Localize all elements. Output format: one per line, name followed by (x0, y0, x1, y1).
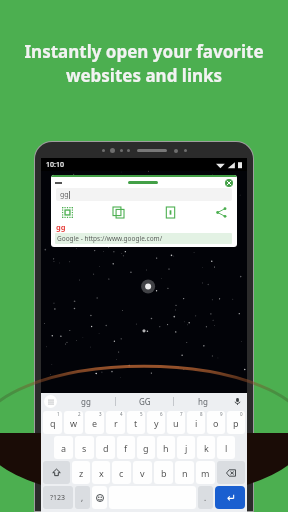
button[interactable]: Save (162, 204, 178, 220)
button[interactable]: t (127, 411, 145, 434)
staticText: 9 (220, 411, 223, 417)
button[interactable]: c (112, 461, 131, 484)
staticText: 2 (78, 411, 81, 417)
staticText: w (70, 417, 78, 429)
staticText: 5 (140, 411, 143, 417)
button[interactable]: Copy (110, 204, 126, 220)
button[interactable]: ?123 (43, 486, 73, 509)
staticText: e (92, 417, 98, 429)
button[interactable]: z (72, 461, 90, 484)
button[interactable]: f (117, 436, 135, 459)
staticText: i (195, 417, 198, 429)
button[interactable]: hg (174, 393, 231, 410)
staticText: gg (81, 396, 91, 407)
button[interactable]: gg (56, 188, 232, 201)
staticText: 3 (99, 411, 102, 417)
button[interactable]: w (64, 411, 83, 434)
staticText: t (134, 417, 138, 429)
staticText: k (204, 442, 209, 454)
button[interactable]: Close (225, 179, 233, 187)
button[interactable]: g (137, 436, 155, 459)
staticText: gg (56, 222, 66, 232)
staticText: m (201, 467, 210, 479)
staticText: , (81, 492, 84, 503)
staticText: z (79, 467, 84, 479)
button[interactable]: j (177, 436, 195, 459)
button[interactable]: , (75, 486, 90, 509)
staticText: gg (60, 190, 69, 200)
staticText: 7 (180, 411, 183, 417)
button[interactable]: k (197, 436, 215, 459)
staticText: 8 (200, 411, 203, 417)
button[interactable]: Google - https://www.google.com/ (55, 233, 232, 244)
button[interactable]: . (198, 486, 213, 509)
staticText: n (182, 467, 188, 479)
button[interactable]: o (207, 411, 225, 434)
button[interactable]: s (75, 436, 94, 459)
button[interactable]: l (217, 436, 235, 459)
staticText: f (124, 442, 128, 454)
staticText: l (225, 442, 228, 454)
button[interactable]: gg (57, 393, 115, 410)
staticText: j (185, 442, 188, 454)
staticText: Google - https://www.google.com/ (57, 234, 163, 243)
staticText: q (50, 417, 56, 429)
staticText: v (140, 467, 145, 479)
staticText: g (143, 442, 149, 454)
staticText: d (103, 442, 109, 454)
staticText: 10:10 (46, 160, 64, 170)
staticText: 6 (160, 411, 163, 417)
button[interactable]: m (196, 461, 215, 484)
button[interactable]: q (43, 411, 62, 434)
button[interactable]: n (175, 461, 194, 484)
staticText: s (82, 442, 87, 454)
staticText: a (61, 442, 67, 454)
button[interactable]: b (154, 461, 173, 484)
staticText: 0 (240, 411, 243, 417)
button[interactable]: x (92, 461, 110, 484)
staticText: p (233, 417, 239, 429)
staticText: 1 (57, 411, 60, 417)
button[interactable]: u (167, 411, 185, 434)
button[interactable]: h (157, 436, 175, 459)
button[interactable]: y (147, 411, 165, 434)
button[interactable]: Voice input (231, 395, 244, 408)
staticText: . (204, 492, 207, 503)
staticText: b (161, 467, 167, 479)
button[interactable]: r (106, 411, 125, 434)
staticText: c (119, 467, 124, 479)
button[interactable]: Enter (215, 486, 245, 509)
staticText: 4 (120, 411, 123, 417)
button[interactable]: GG (116, 393, 173, 410)
button[interactable]: Backspace (217, 461, 245, 484)
staticText: GG (139, 396, 151, 407)
staticText: ?123 (50, 493, 66, 503)
button[interactable]: p (227, 411, 245, 434)
button[interactable]: i (187, 411, 205, 434)
button[interactable]: Shift (43, 461, 70, 484)
staticText: h (163, 442, 169, 454)
button[interactable]: Share (213, 204, 229, 220)
button[interactable] (92, 486, 107, 509)
button[interactable]: d (96, 436, 115, 459)
staticText: x (99, 467, 104, 479)
staticText: r (114, 417, 118, 429)
staticText: Instantly open your favorite websites an… (14, 40, 274, 87)
button[interactable]: v (133, 461, 152, 484)
staticText: o (213, 417, 219, 429)
staticText: hg (198, 396, 208, 407)
button[interactable]: e (85, 411, 104, 434)
button[interactable]: a (54, 436, 73, 459)
staticText: u (173, 417, 179, 429)
button[interactable]: Scan QR code (59, 204, 75, 220)
button[interactable]: Keyboard options (44, 395, 57, 408)
staticText: y (154, 417, 159, 429)
